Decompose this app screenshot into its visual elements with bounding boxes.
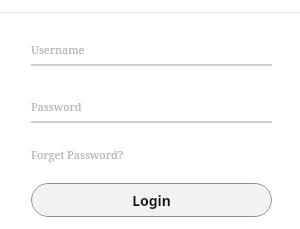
button[interactable]: Username	[31, 42, 272, 66]
button[interactable]: Password	[31, 99, 272, 123]
staticText: Forget Password?	[31, 147, 123, 162]
staticText: Username	[31, 42, 85, 57]
staticText: Login	[132, 191, 171, 210]
button[interactable]: Forget Password?	[31, 147, 123, 162]
button[interactable]: Login	[31, 183, 272, 217]
staticText: Password	[31, 99, 82, 114]
